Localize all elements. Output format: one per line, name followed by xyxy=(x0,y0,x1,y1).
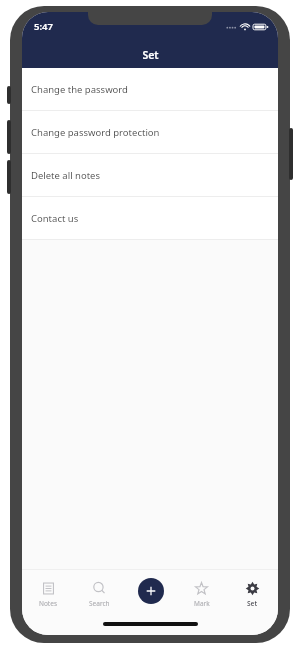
staticText: Delete all notes xyxy=(31,169,101,182)
staticText: Set xyxy=(142,48,159,62)
button[interactable]: Change password protection xyxy=(22,111,278,154)
staticText: Search xyxy=(89,599,110,608)
button[interactable]: Search xyxy=(74,569,125,619)
staticText: Change the password xyxy=(31,83,128,96)
button[interactable]: Contact us xyxy=(22,197,278,240)
button[interactable]: Change the password xyxy=(22,68,278,111)
staticText: Notes xyxy=(39,599,57,608)
button[interactable]: Mark xyxy=(176,569,227,619)
staticText: 5:47 xyxy=(34,20,53,33)
button[interactable]: Delete all notes xyxy=(22,154,278,197)
button[interactable]: Notes xyxy=(22,569,74,619)
button[interactable]: Set xyxy=(227,569,278,619)
button[interactable]: Add note xyxy=(138,578,164,604)
staticText: Change password protection xyxy=(31,126,160,139)
staticText: Set xyxy=(247,599,258,608)
staticText: Mark xyxy=(194,599,210,608)
staticText: Contact us xyxy=(31,212,79,225)
